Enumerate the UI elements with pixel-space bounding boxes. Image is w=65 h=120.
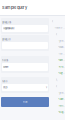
- staticText: conve: [3, 65, 8, 68]
- staticText: group_id: [2, 38, 10, 41]
- staticText: "tag": "legend",: [58, 72, 65, 75]
- staticText: ratio: [2, 80, 7, 83]
- staticText: "count": 42,: [58, 46, 65, 49]
- staticText: {: [52, 20, 53, 23]
- staticText: "label": "one",: [58, 98, 65, 101]
- staticText: "ratio": 0.123,: [58, 52, 65, 55]
- staticText: legendware: [3, 27, 14, 30]
- staticText: "group_id": 11,: [58, 91, 65, 94]
- staticText: 0.123: [3, 86, 7, 89]
- staticText: "slug": "three": [58, 111, 65, 114]
- staticText: Sample query: [2, 5, 27, 10]
- staticText: {: [56, 85, 57, 88]
- staticText: fields: [2, 59, 8, 62]
- staticText: group_ids: [2, 21, 11, 24]
- staticText: {: [56, 33, 57, 36]
- staticText: "note": "two",: [58, 104, 65, 107]
- staticText: "results": [: [54, 26, 65, 29]
- staticText: Run: [23, 100, 27, 103]
- button[interactable]: Run: [1, 97, 49, 107]
- staticText: "group_id": 10,: [58, 39, 65, 42]
- staticText: v: [46, 86, 47, 89]
- staticText: "name": "abc",: [58, 59, 65, 62]
- staticText: "kind": "xyz",: [58, 65, 65, 68]
- staticText: },: [56, 78, 58, 81]
